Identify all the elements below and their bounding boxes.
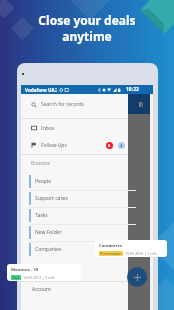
button[interactable]: New Folder	[21, 224, 128, 241]
staticText: Search for records	[41, 101, 84, 108]
staticText: Business	[31, 160, 51, 166]
button[interactable]: Monitors - 10	[7, 264, 81, 281]
staticText: 19.05.2016 | 1 refs	[125, 251, 157, 256]
button[interactable]: Follow-Ups	[21, 137, 128, 153]
button[interactable]: More options	[139, 102, 143, 107]
button[interactable]: Tasks	[21, 207, 128, 224]
button[interactable]: People	[21, 173, 128, 190]
button[interactable]: Containers	[95, 240, 167, 257]
staticText: Tasks	[35, 212, 48, 219]
staticText: Account	[32, 286, 52, 293]
button[interactable]: Companies	[21, 241, 128, 258]
staticText: 14.09.2017 | 2 refs	[23, 275, 55, 280]
staticText: Monitors - 10	[11, 267, 39, 273]
staticText: 6	[108, 143, 111, 148]
staticText: 18:22	[126, 86, 139, 93]
staticText: Close your deals anytime	[0, 12, 174, 44]
button[interactable]: Inbox	[21, 120, 128, 136]
staticText: Follow-Ups	[41, 142, 67, 149]
staticText: Presentation	[100, 251, 122, 256]
staticText: New Folder	[35, 229, 62, 236]
staticText: Support cases	[35, 195, 68, 202]
staticText: 4	[120, 143, 123, 148]
staticText: Inbox	[41, 125, 55, 132]
staticText: Vodafone UA	[25, 87, 55, 93]
staticText: Companies	[35, 246, 62, 253]
staticText: Visit	[12, 275, 20, 280]
button[interactable]: Account	[21, 281, 128, 297]
button[interactable]: Add	[127, 267, 147, 287]
staticText: Containers	[99, 243, 122, 249]
staticText: People	[35, 178, 52, 185]
button[interactable]: Support cases	[21, 190, 128, 207]
button[interactable]: Search for records	[21, 96, 128, 113]
